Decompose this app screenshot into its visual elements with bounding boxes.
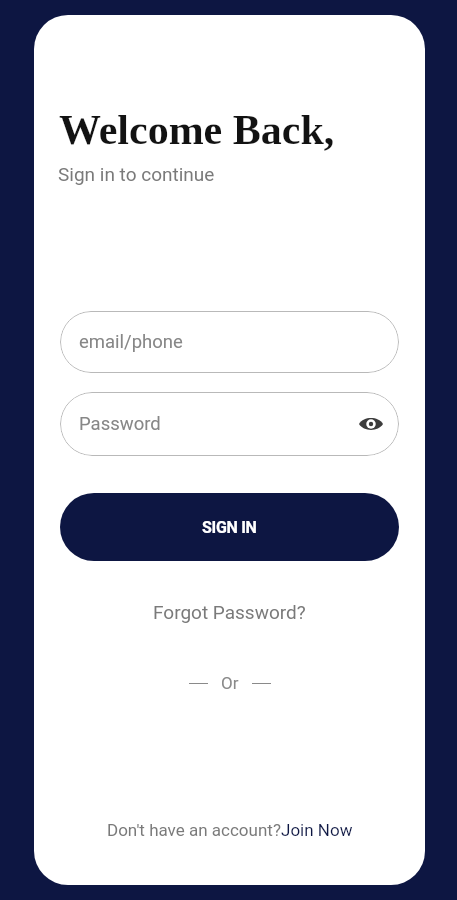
button[interactable]: Show password [354, 407, 388, 441]
staticText: email/phone [79, 331, 183, 353]
staticText: Or [221, 673, 239, 693]
button[interactable]: Join Now [281, 820, 353, 840]
staticText: SIGN IN [202, 518, 257, 537]
staticText: Welcome Back, [59, 107, 335, 154]
staticText: Forgot Password? [153, 601, 306, 623]
staticText: Don't have an account? [107, 820, 281, 840]
staticText: Sign in to continue [58, 163, 215, 185]
button[interactable]: Password [60, 392, 399, 456]
staticText: Password [79, 413, 161, 435]
button[interactable]: SIGN IN [60, 493, 399, 561]
staticText: Join Now [281, 820, 353, 840]
button[interactable]: Forgot Password? [34, 596, 425, 628]
button[interactable]: email/phone [60, 311, 399, 373]
